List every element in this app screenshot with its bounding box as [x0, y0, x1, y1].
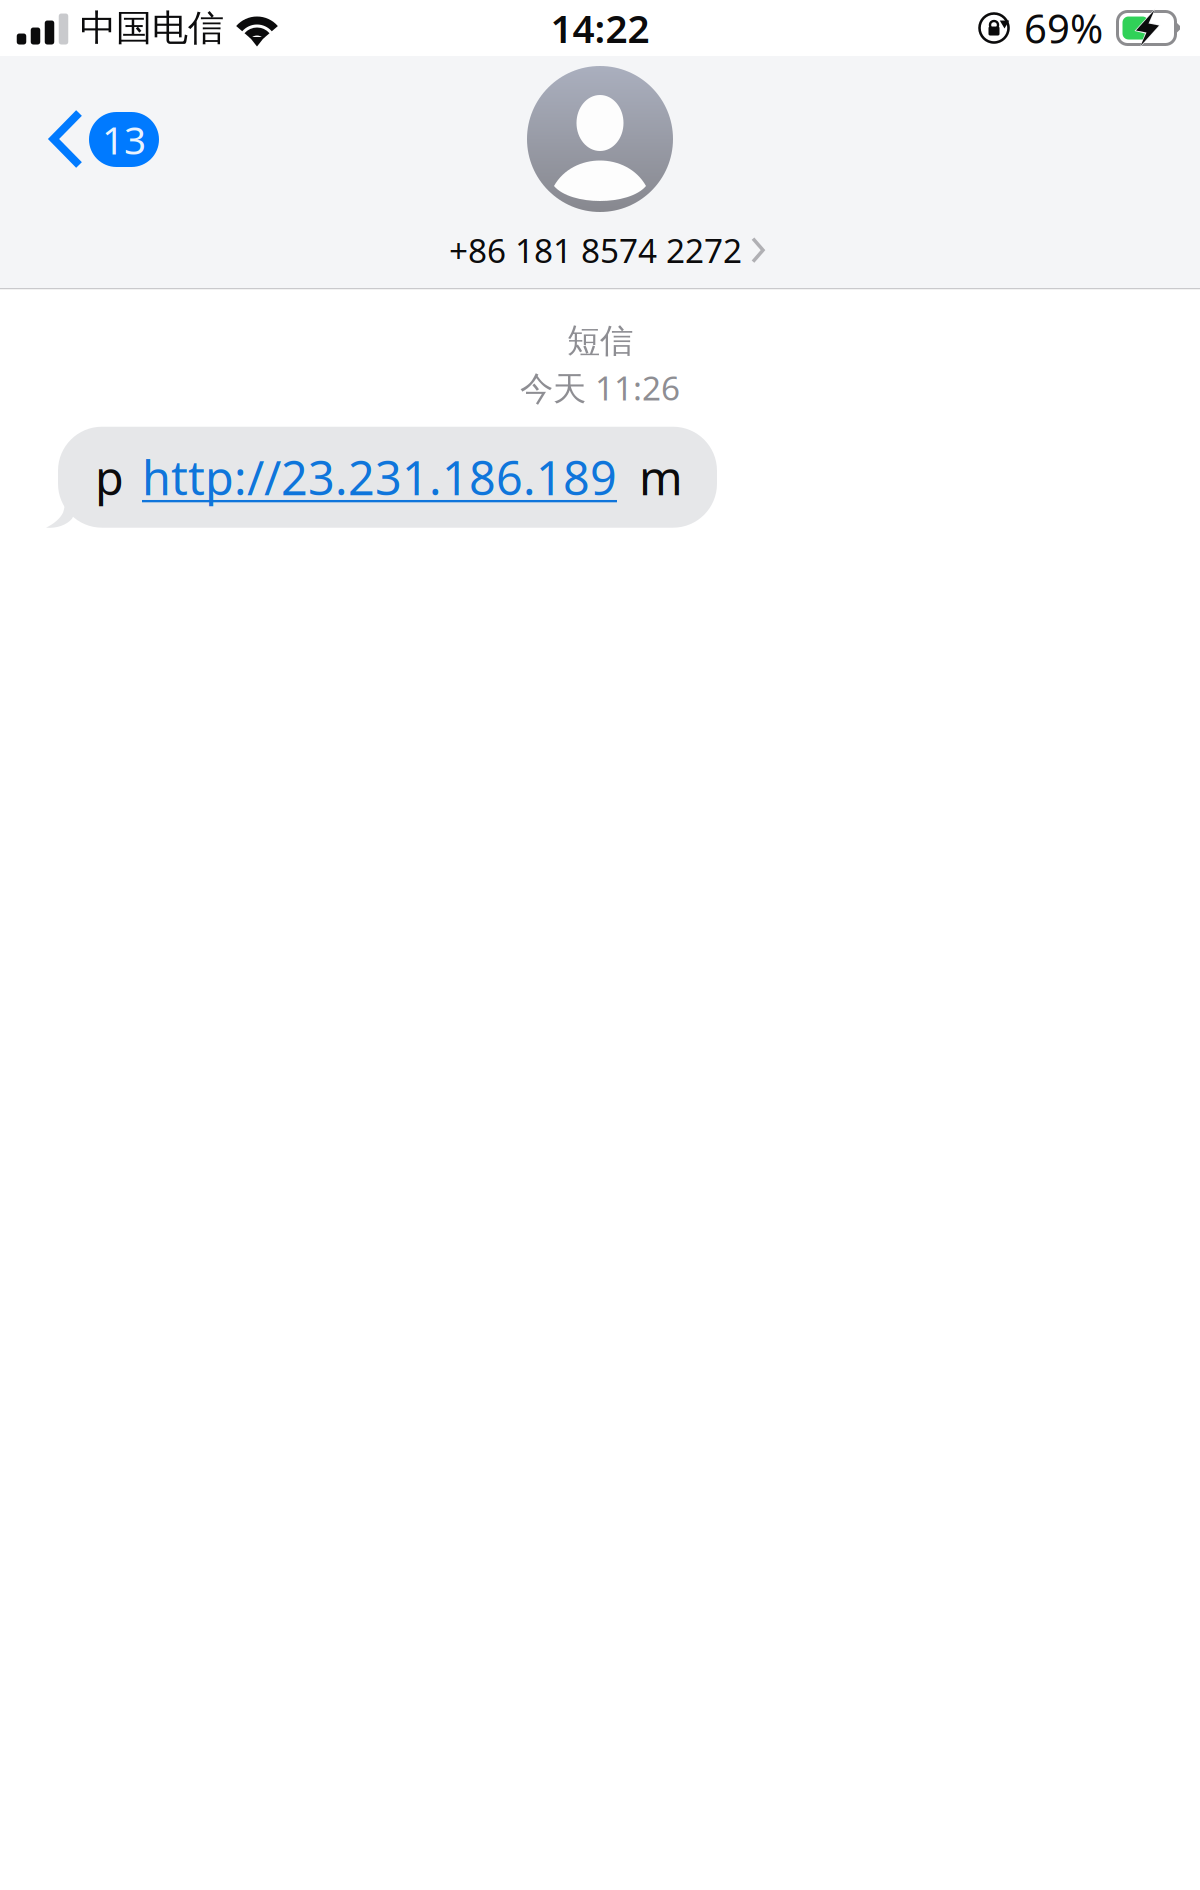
staticText: 中国电信	[80, 6, 224, 50]
staticText: 短信	[567, 320, 633, 361]
staticText: 14:22	[550, 2, 649, 54]
staticText: 今天 11:26	[520, 365, 680, 410]
button[interactable]: p	[58, 427, 717, 528]
button[interactable]: +86 181 8574 2272	[435, 56, 765, 272]
staticText: http://23.231.186.189	[142, 446, 617, 508]
staticText: 69%	[1024, 1, 1103, 54]
staticText: 13	[102, 114, 146, 165]
staticText: +86 181 8574 2272	[449, 228, 742, 272]
button[interactable]: Back to Messages, 13 unread	[0, 99, 183, 180]
staticText: p	[95, 446, 124, 508]
staticText: m	[639, 446, 683, 508]
